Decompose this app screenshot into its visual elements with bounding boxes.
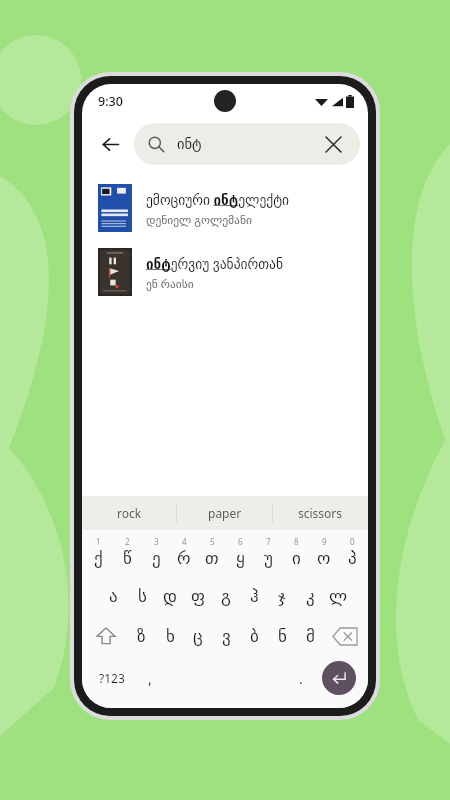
button[interactable]: ინტერვიუ ვანპირთან [82,240,368,304]
button[interactable]: 2 [113,534,142,576]
staticText: . [299,669,303,688]
button[interactable]: 7 [254,534,282,576]
button[interactable]: ზ [127,616,156,656]
staticText: ხ [166,626,175,646]
button[interactable]: 8 [282,534,310,576]
button[interactable]: , [135,656,164,700]
staticText: ფ [191,586,206,606]
button[interactable]: scissors [273,496,368,530]
staticText: ?123 [99,670,125,686]
button[interactable]: დ [156,576,184,616]
button[interactable]: ?123 [88,656,135,700]
button[interactable]: Backspace [324,616,366,656]
staticText: ჰ [250,586,259,606]
button[interactable]: ა [99,576,128,616]
staticText: paper [208,505,242,521]
staticText: 5 [210,536,215,547]
staticText: ი [292,548,301,568]
button[interactable]: rock [82,496,176,530]
staticText: ნ [278,626,287,646]
staticText: ემოციური ინტელექტი [146,191,290,209]
staticText: ე [152,548,161,568]
staticText: ზ [137,626,146,646]
staticText: , [148,669,152,688]
button[interactable]: მ [296,616,324,656]
staticText: scissors [298,505,343,521]
button[interactable]: ნ [268,616,296,656]
staticText: ქ [94,548,103,568]
staticText: 9:30 [98,93,123,110]
staticText: 9 [322,536,327,547]
button[interactable]: 4 [170,534,198,576]
staticText: თ [205,548,219,568]
staticText: 1 [96,536,101,547]
button[interactable]: 9 [310,534,338,576]
staticText: წ [123,548,132,568]
staticText: 0 [350,536,355,547]
staticText: 4 [182,536,187,547]
button[interactable]: ხ [156,616,184,656]
staticText: გ [221,586,231,606]
staticText: 8 [294,536,299,547]
button[interactable]: კ [296,576,324,616]
button[interactable]: ც [184,616,212,656]
staticText: ჯ [278,586,286,606]
button[interactable]: 5 [198,534,226,576]
button[interactable]: . [286,656,315,700]
staticText: პ [348,548,357,568]
button[interactable]: ვ [212,616,240,656]
button[interactable]: ფ [184,576,212,616]
button[interactable]: Back [90,124,130,164]
button[interactable]: Enter [322,661,356,695]
staticText: ყ [236,548,245,568]
staticText: ინტერვიუ ვანპირთან [146,255,283,273]
staticText: ინტ [177,136,202,153]
button[interactable]: Shift [84,616,127,656]
button[interactable]: ჰ [240,576,268,616]
staticText: მ [306,626,315,646]
staticText: 2 [125,536,130,547]
button[interactable]: ემოციური ინტელექტი [82,176,368,240]
staticText: rock [117,505,142,521]
button[interactable]: 0 [338,534,366,576]
button[interactable]: ლ [324,576,352,616]
staticText: 6 [238,536,243,547]
staticText: ც [193,626,203,646]
staticText: რ [177,548,191,568]
button[interactable]: ჯ [268,576,296,616]
staticText: კ [306,586,315,606]
staticText: ლ [329,586,348,606]
button[interactable]: 3 [142,534,170,576]
button[interactable]: ინტ [134,123,360,165]
staticText: უ [264,548,273,568]
button[interactable]: paper [177,496,272,530]
button[interactable]: გ [212,576,240,616]
staticText: ენ რაისი [146,276,194,292]
button[interactable]: ბ [240,616,268,656]
staticText: ა [109,586,118,606]
staticText: ბ [250,626,259,646]
staticText: დენიელ გოლემანი [146,212,252,228]
staticText: 3 [154,536,159,547]
button[interactable]: ს [128,576,156,616]
staticText: დ [163,586,177,606]
staticText: ო [317,548,331,568]
staticText: ვ [222,626,231,646]
button[interactable]: 6 [226,534,254,576]
button[interactable]: Clear search [320,131,346,157]
button[interactable]: 1 [84,534,113,576]
staticText: 7 [266,536,271,547]
staticText: ს [138,586,147,606]
